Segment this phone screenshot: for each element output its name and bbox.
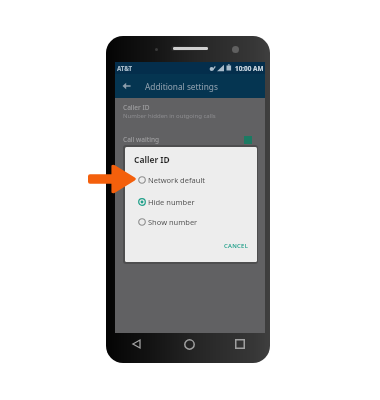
button[interactable]: Navigate up (115, 74, 137, 98)
button[interactable]: Hide number (125, 194, 257, 210)
button[interactable]: Show number (125, 214, 257, 230)
button[interactable]: Network default (125, 172, 257, 188)
button[interactable]: Call waiting (115, 132, 265, 146)
staticText: Additional settings (145, 81, 218, 92)
staticText: Hide number (148, 197, 195, 207)
button[interactable]: CANCEL (219, 238, 254, 254)
button[interactable]: Home (172, 333, 206, 363)
staticText: Call waiting (123, 135, 160, 144)
button[interactable]: Recent apps (223, 333, 257, 363)
button[interactable]: Back (119, 333, 153, 363)
staticText: Number hidden in outgoing calls (123, 112, 216, 120)
staticText: Network default (148, 175, 206, 185)
staticText: Caller ID (134, 154, 170, 165)
staticText: Caller ID (123, 103, 150, 112)
staticText: AT&T (117, 64, 133, 72)
staticText: Show number (148, 217, 198, 227)
staticText: 10:00 AM (235, 64, 264, 73)
staticText: CANCEL (224, 242, 249, 250)
button[interactable]: Caller ID (115, 101, 265, 122)
